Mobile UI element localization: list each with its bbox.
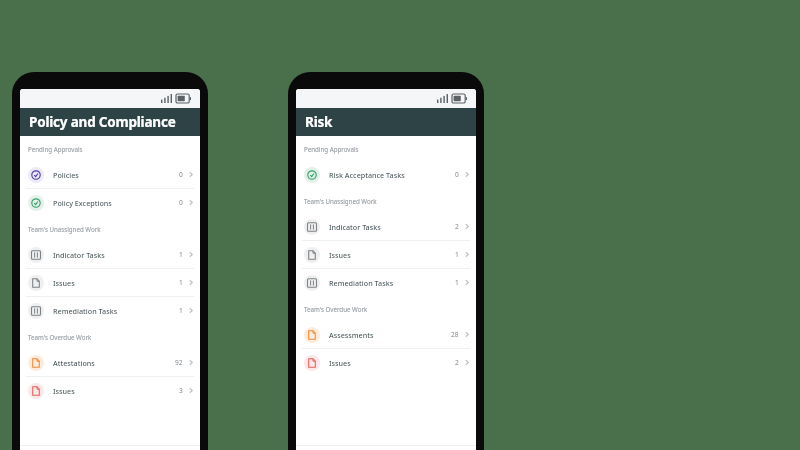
staticText: 1 [179, 306, 183, 315]
staticText: Assessments [329, 330, 451, 340]
staticText: 0 [179, 198, 183, 207]
staticText: Indicator Tasks [329, 222, 455, 232]
button[interactable]: Issues [20, 377, 200, 404]
staticText: Pending Approvals [304, 145, 359, 153]
staticText: 1 [455, 250, 459, 259]
staticText: Team's Unassigned Work [304, 197, 377, 205]
staticText: 2 [455, 222, 459, 231]
button[interactable]: Issues [296, 349, 476, 376]
staticText: 1 [455, 278, 459, 287]
button[interactable]: Attestations [20, 349, 200, 376]
staticText: Team's Unassigned Work [28, 225, 101, 233]
button[interactable]: Risk Acceptance Tasks [296, 161, 476, 188]
button[interactable]: Policies [20, 161, 200, 188]
staticText: Remediation Tasks [329, 278, 455, 288]
button[interactable]: Indicator Tasks [296, 213, 476, 240]
staticText: 1 [179, 250, 183, 259]
staticText: 28 [451, 330, 459, 339]
staticText: 3 [179, 386, 183, 395]
staticText: 1 [179, 278, 183, 287]
staticText: Indicator Tasks [53, 250, 179, 260]
staticText: Pending Approvals [28, 145, 83, 153]
staticText: Issues [53, 278, 179, 288]
staticText: Risk Acceptance Tasks [329, 170, 455, 180]
staticText: Risk [305, 113, 333, 131]
staticText: Attestations [53, 358, 175, 368]
staticText: Team's Overdue Work [28, 333, 92, 341]
staticText: Remediation Tasks [53, 306, 179, 316]
staticText: 0 [179, 170, 183, 179]
button[interactable]: Assessments [296, 321, 476, 348]
staticText: Issues [329, 250, 455, 260]
button[interactable]: Issues [296, 241, 476, 268]
staticText: 0 [455, 170, 459, 179]
staticText: 92 [175, 358, 183, 367]
staticText: Issues [53, 386, 179, 396]
button[interactable]: Issues [20, 269, 200, 296]
staticText: Policies [53, 170, 179, 180]
button[interactable]: Remediation Tasks [296, 269, 476, 296]
button[interactable]: Indicator Tasks [20, 241, 200, 268]
button[interactable]: Remediation Tasks [20, 297, 200, 324]
staticText: 2 [455, 358, 459, 367]
button[interactable]: Policy Exceptions [20, 189, 200, 216]
staticText: Policy and Compliance [29, 113, 176, 131]
staticText: Team's Overdue Work [304, 305, 368, 313]
staticText: Issues [329, 358, 455, 368]
staticText: Policy Exceptions [53, 198, 179, 208]
